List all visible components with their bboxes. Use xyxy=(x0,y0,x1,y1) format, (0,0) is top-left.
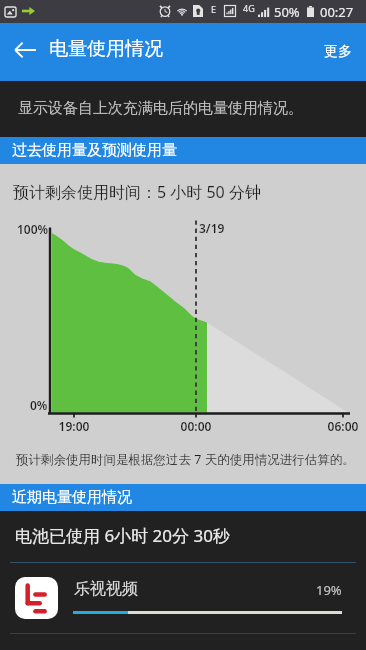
staticText: 电量使用情况 xyxy=(49,37,163,61)
staticText: 预计剩余使用时间是根据您过去 7 天的使用情况进行估算的。 xyxy=(16,451,355,468)
staticText: 电池已使用 6小时 20分 30秒 xyxy=(15,524,230,547)
staticText: 0% xyxy=(30,397,48,413)
button[interactable]: 更多 xyxy=(310,31,366,73)
staticText: 00:27 xyxy=(320,3,354,21)
staticText: 00:00 xyxy=(156,418,236,434)
staticText: 4G xyxy=(243,2,255,14)
staticText: 3/19 xyxy=(199,220,225,236)
staticText: 近期电量使用情况 xyxy=(12,488,132,507)
staticText: 19:00 xyxy=(34,418,114,434)
staticText: 06:00 xyxy=(303,418,366,434)
staticText: 更多 xyxy=(324,43,352,61)
staticText: 100% xyxy=(17,221,49,237)
staticText: 19% xyxy=(316,581,342,599)
button[interactable]: 乐视视频 xyxy=(0,563,366,628)
staticText: 过去使用量及预测使用量 xyxy=(12,141,177,160)
button[interactable]: Back xyxy=(0,23,48,81)
staticText: 50% xyxy=(274,3,300,21)
staticText: 显示设备自上次充满电后的电量使用情况。 xyxy=(18,99,303,118)
staticText: E xyxy=(211,3,217,15)
staticText: 乐视视频 xyxy=(74,579,138,599)
staticText: 预计剩余使用时间：5 小时 50 分钟 xyxy=(13,181,261,203)
